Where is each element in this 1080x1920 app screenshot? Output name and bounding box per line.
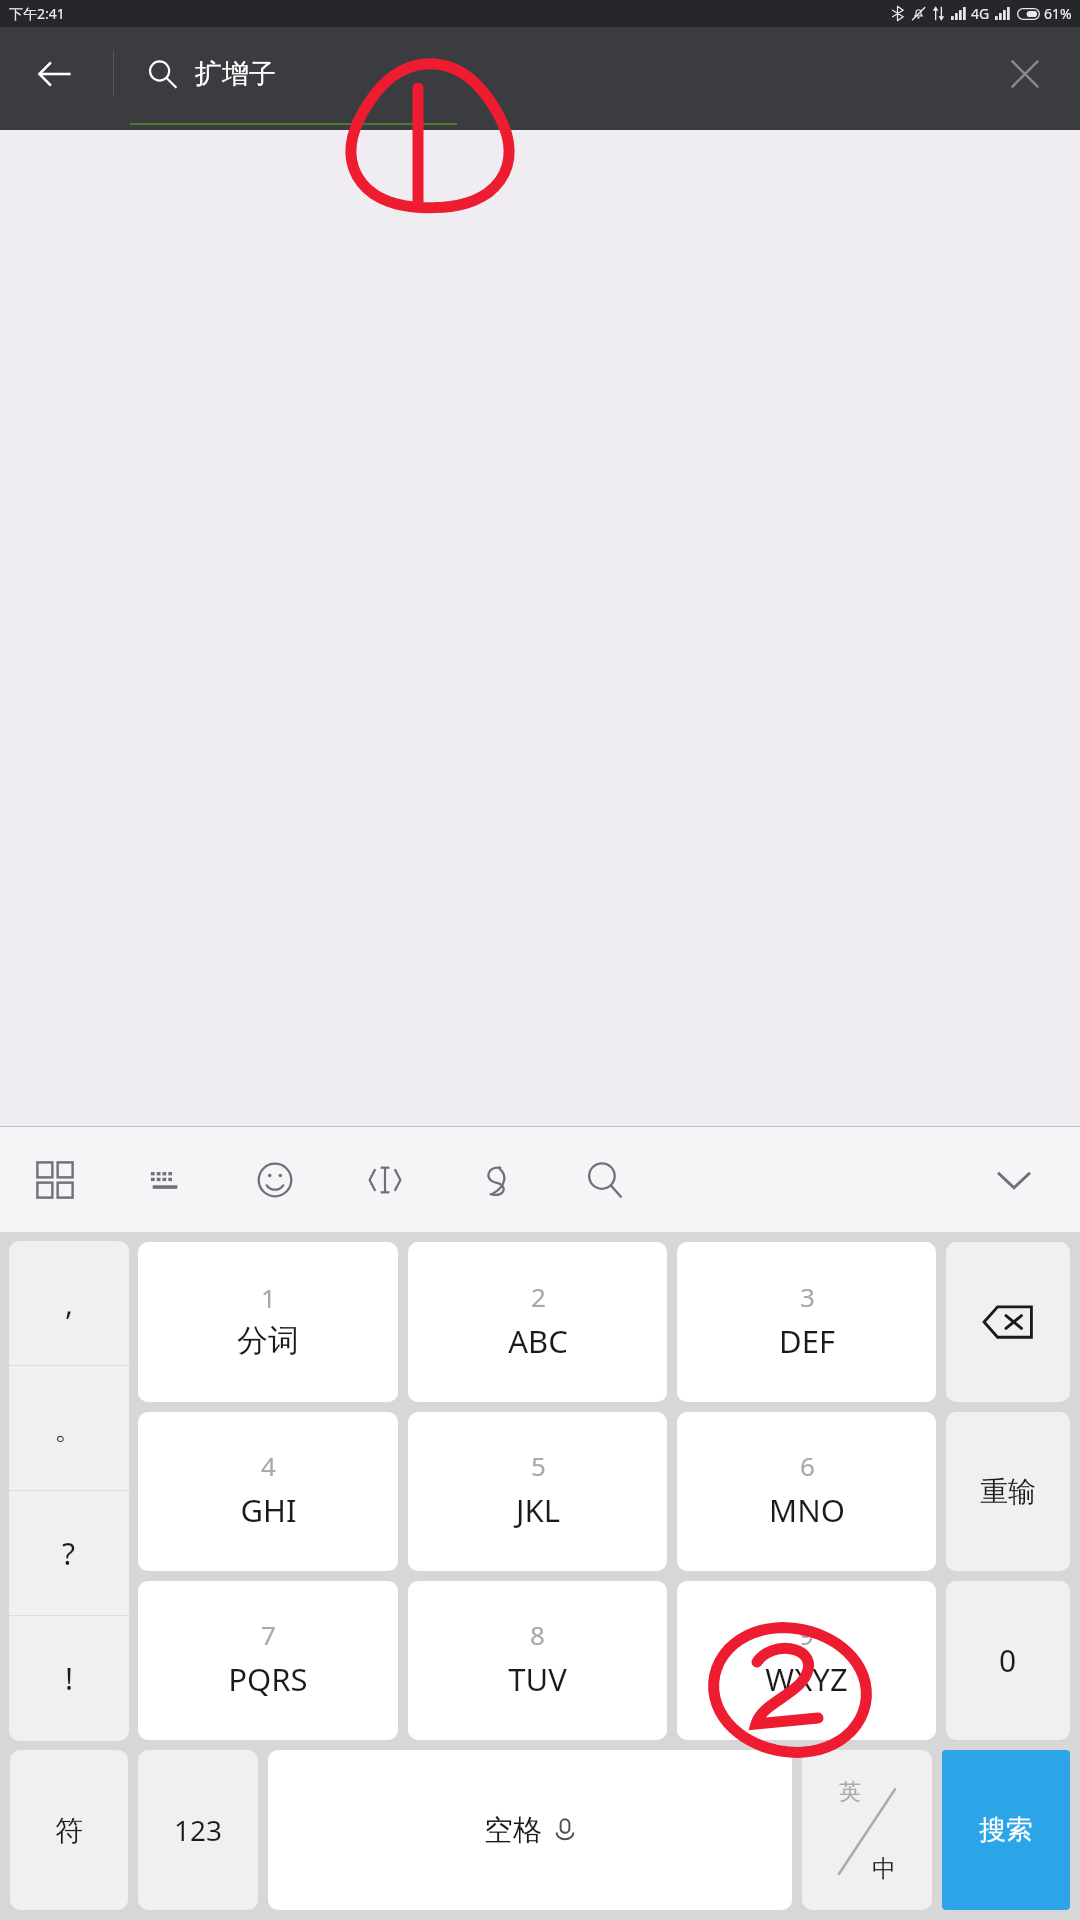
button[interactable]: 1 bbox=[138, 1242, 398, 1402]
button[interactable]: ! bbox=[9, 1616, 129, 1741]
staticText: 5 bbox=[531, 1448, 546, 1483]
staticText: JKL bbox=[516, 1489, 560, 1531]
button[interactable]: Backspace bbox=[946, 1242, 1070, 1402]
staticText: ! bbox=[65, 1658, 74, 1699]
staticText: ? bbox=[62, 1533, 76, 1574]
staticText: 英 bbox=[839, 1778, 861, 1806]
staticText: WXYZ bbox=[765, 1658, 848, 1700]
button[interactable]: Back bbox=[0, 27, 110, 130]
button[interactable]: 9 bbox=[677, 1581, 936, 1740]
button[interactable]: Switch English Chinese bbox=[802, 1750, 932, 1910]
staticText: 分词 bbox=[237, 1321, 299, 1360]
staticText: 6 bbox=[800, 1448, 815, 1483]
button[interactable]: 空格 bbox=[268, 1750, 792, 1910]
staticText: 下午2:41 bbox=[9, 4, 65, 23]
button[interactable]: 4 bbox=[138, 1412, 398, 1571]
staticText: 1 bbox=[261, 1280, 276, 1315]
staticText: 3 bbox=[800, 1279, 815, 1314]
button[interactable]: Clipboard bbox=[440, 1127, 550, 1232]
staticText: 扩增子 bbox=[195, 57, 276, 91]
button[interactable]: Move cursor bbox=[330, 1127, 440, 1232]
button[interactable]: 。 bbox=[9, 1366, 129, 1491]
button[interactable]: 2 bbox=[408, 1242, 667, 1402]
staticText: TUV bbox=[508, 1658, 567, 1700]
staticText: GHI bbox=[240, 1489, 297, 1531]
button[interactable]: 6 bbox=[677, 1412, 936, 1571]
staticText: 搜索 bbox=[979, 1813, 1033, 1847]
staticText: 中 bbox=[872, 1854, 896, 1884]
button[interactable]: ? bbox=[9, 1491, 129, 1616]
staticText: 123 bbox=[174, 1811, 223, 1849]
staticText: 4G bbox=[971, 4, 990, 23]
button[interactable]: Layouts bbox=[0, 1127, 110, 1232]
staticText: MNO bbox=[769, 1489, 845, 1531]
button[interactable]: 0 bbox=[946, 1581, 1070, 1740]
staticText: 重输 bbox=[980, 1474, 1036, 1509]
staticText: ABC bbox=[508, 1320, 568, 1362]
staticText: PQRS bbox=[228, 1658, 308, 1700]
staticText: DEF bbox=[779, 1320, 835, 1362]
staticText: 61% bbox=[1044, 4, 1072, 23]
staticText: , bbox=[65, 1283, 74, 1324]
button[interactable]: Emoji bbox=[220, 1127, 330, 1232]
staticText: 4 bbox=[261, 1448, 276, 1483]
button[interactable]: 符 bbox=[10, 1750, 128, 1910]
button[interactable]: 8 bbox=[408, 1581, 667, 1740]
staticText: 7 bbox=[261, 1617, 276, 1652]
button[interactable]: 重输 bbox=[946, 1412, 1070, 1571]
staticText: 9 bbox=[799, 1617, 814, 1652]
button[interactable]: Hide keyboard bbox=[948, 1127, 1080, 1232]
button[interactable]: , bbox=[9, 1241, 129, 1366]
button[interactable]: 3 bbox=[677, 1242, 936, 1402]
staticText: 空格 bbox=[484, 1812, 542, 1849]
button[interactable]: 5 bbox=[408, 1412, 667, 1571]
button[interactable]: Keyboard settings bbox=[110, 1127, 220, 1232]
button[interactable]: 搜索 bbox=[942, 1750, 1070, 1910]
staticText: 。 bbox=[54, 1410, 84, 1448]
button[interactable]: 123 bbox=[138, 1750, 258, 1910]
button[interactable]: Clear text bbox=[970, 27, 1080, 130]
button[interactable]: Search bbox=[550, 1127, 660, 1232]
staticText: 8 bbox=[530, 1617, 545, 1652]
staticText: 符 bbox=[55, 1813, 83, 1848]
staticText: 2 bbox=[531, 1279, 546, 1314]
staticText: 0 bbox=[999, 1640, 1017, 1681]
button[interactable]: 7 bbox=[138, 1581, 398, 1740]
